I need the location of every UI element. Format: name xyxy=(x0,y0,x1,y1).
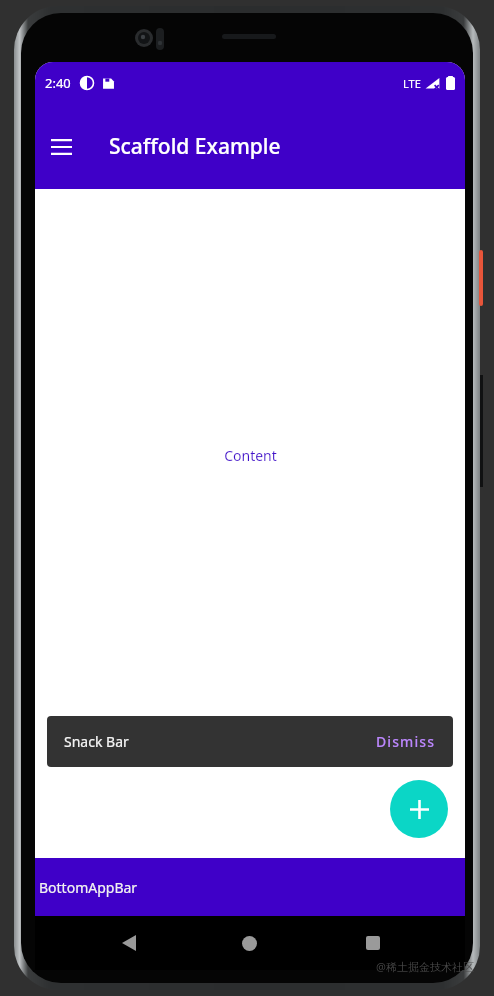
button[interactable]: Dismiss xyxy=(376,732,436,751)
staticText: BottomAppBar xyxy=(39,878,138,897)
staticText: 2:40 xyxy=(45,74,71,92)
staticText: Snack Bar xyxy=(64,732,129,751)
staticText: Scaffold Example xyxy=(109,132,281,161)
staticText: @稀土掘金技术社区 xyxy=(376,959,474,974)
staticText: Dismiss xyxy=(376,732,436,751)
staticText: Content xyxy=(224,446,277,465)
button[interactable]: Home xyxy=(220,916,278,970)
button[interactable]: Add xyxy=(390,780,448,838)
button[interactable]: Recent apps xyxy=(344,916,402,970)
button[interactable]: Back xyxy=(100,916,158,970)
staticText: LTE xyxy=(403,76,421,91)
button[interactable]: BottomAppBar xyxy=(35,858,465,916)
button[interactable]: Open navigation menu xyxy=(37,123,85,171)
